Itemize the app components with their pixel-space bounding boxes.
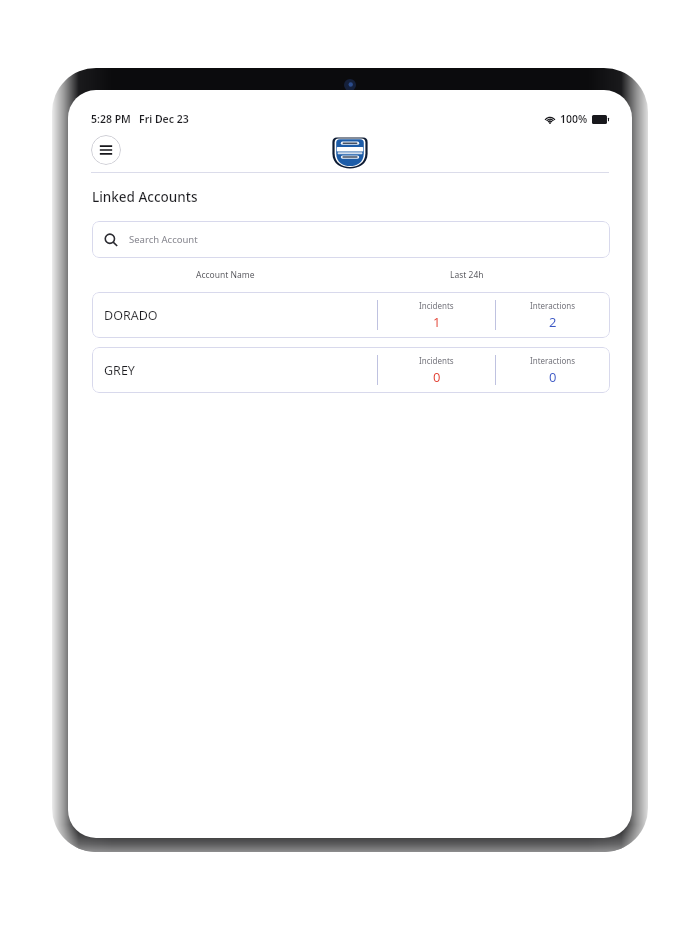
staticText: 0 bbox=[549, 368, 557, 386]
staticText: 1 bbox=[433, 313, 441, 331]
staticText: 2 bbox=[549, 313, 557, 331]
staticText: Interactions bbox=[530, 300, 576, 311]
staticText: Linked Accounts bbox=[92, 188, 198, 206]
staticText: DORADO bbox=[104, 307, 158, 324]
staticText: Search Account bbox=[129, 233, 198, 246]
staticText: Fri Dec 23 bbox=[139, 112, 189, 126]
button[interactable]: Search Account bbox=[92, 221, 610, 258]
button[interactable]: Open navigation menu bbox=[91, 135, 121, 165]
staticText: Incidents bbox=[419, 300, 454, 311]
staticText: GREY bbox=[104, 362, 135, 379]
button[interactable]: GREY bbox=[92, 347, 610, 393]
staticText: Last 24h bbox=[450, 269, 484, 281]
staticText: 5:28 PM bbox=[91, 112, 131, 126]
staticText: 0 bbox=[433, 368, 441, 386]
staticText: Account Name bbox=[196, 269, 255, 281]
staticText: Incidents bbox=[419, 355, 454, 366]
staticText: Interactions bbox=[530, 355, 576, 366]
staticText: 100% bbox=[560, 112, 588, 126]
button[interactable]: DORADO bbox=[92, 292, 610, 338]
